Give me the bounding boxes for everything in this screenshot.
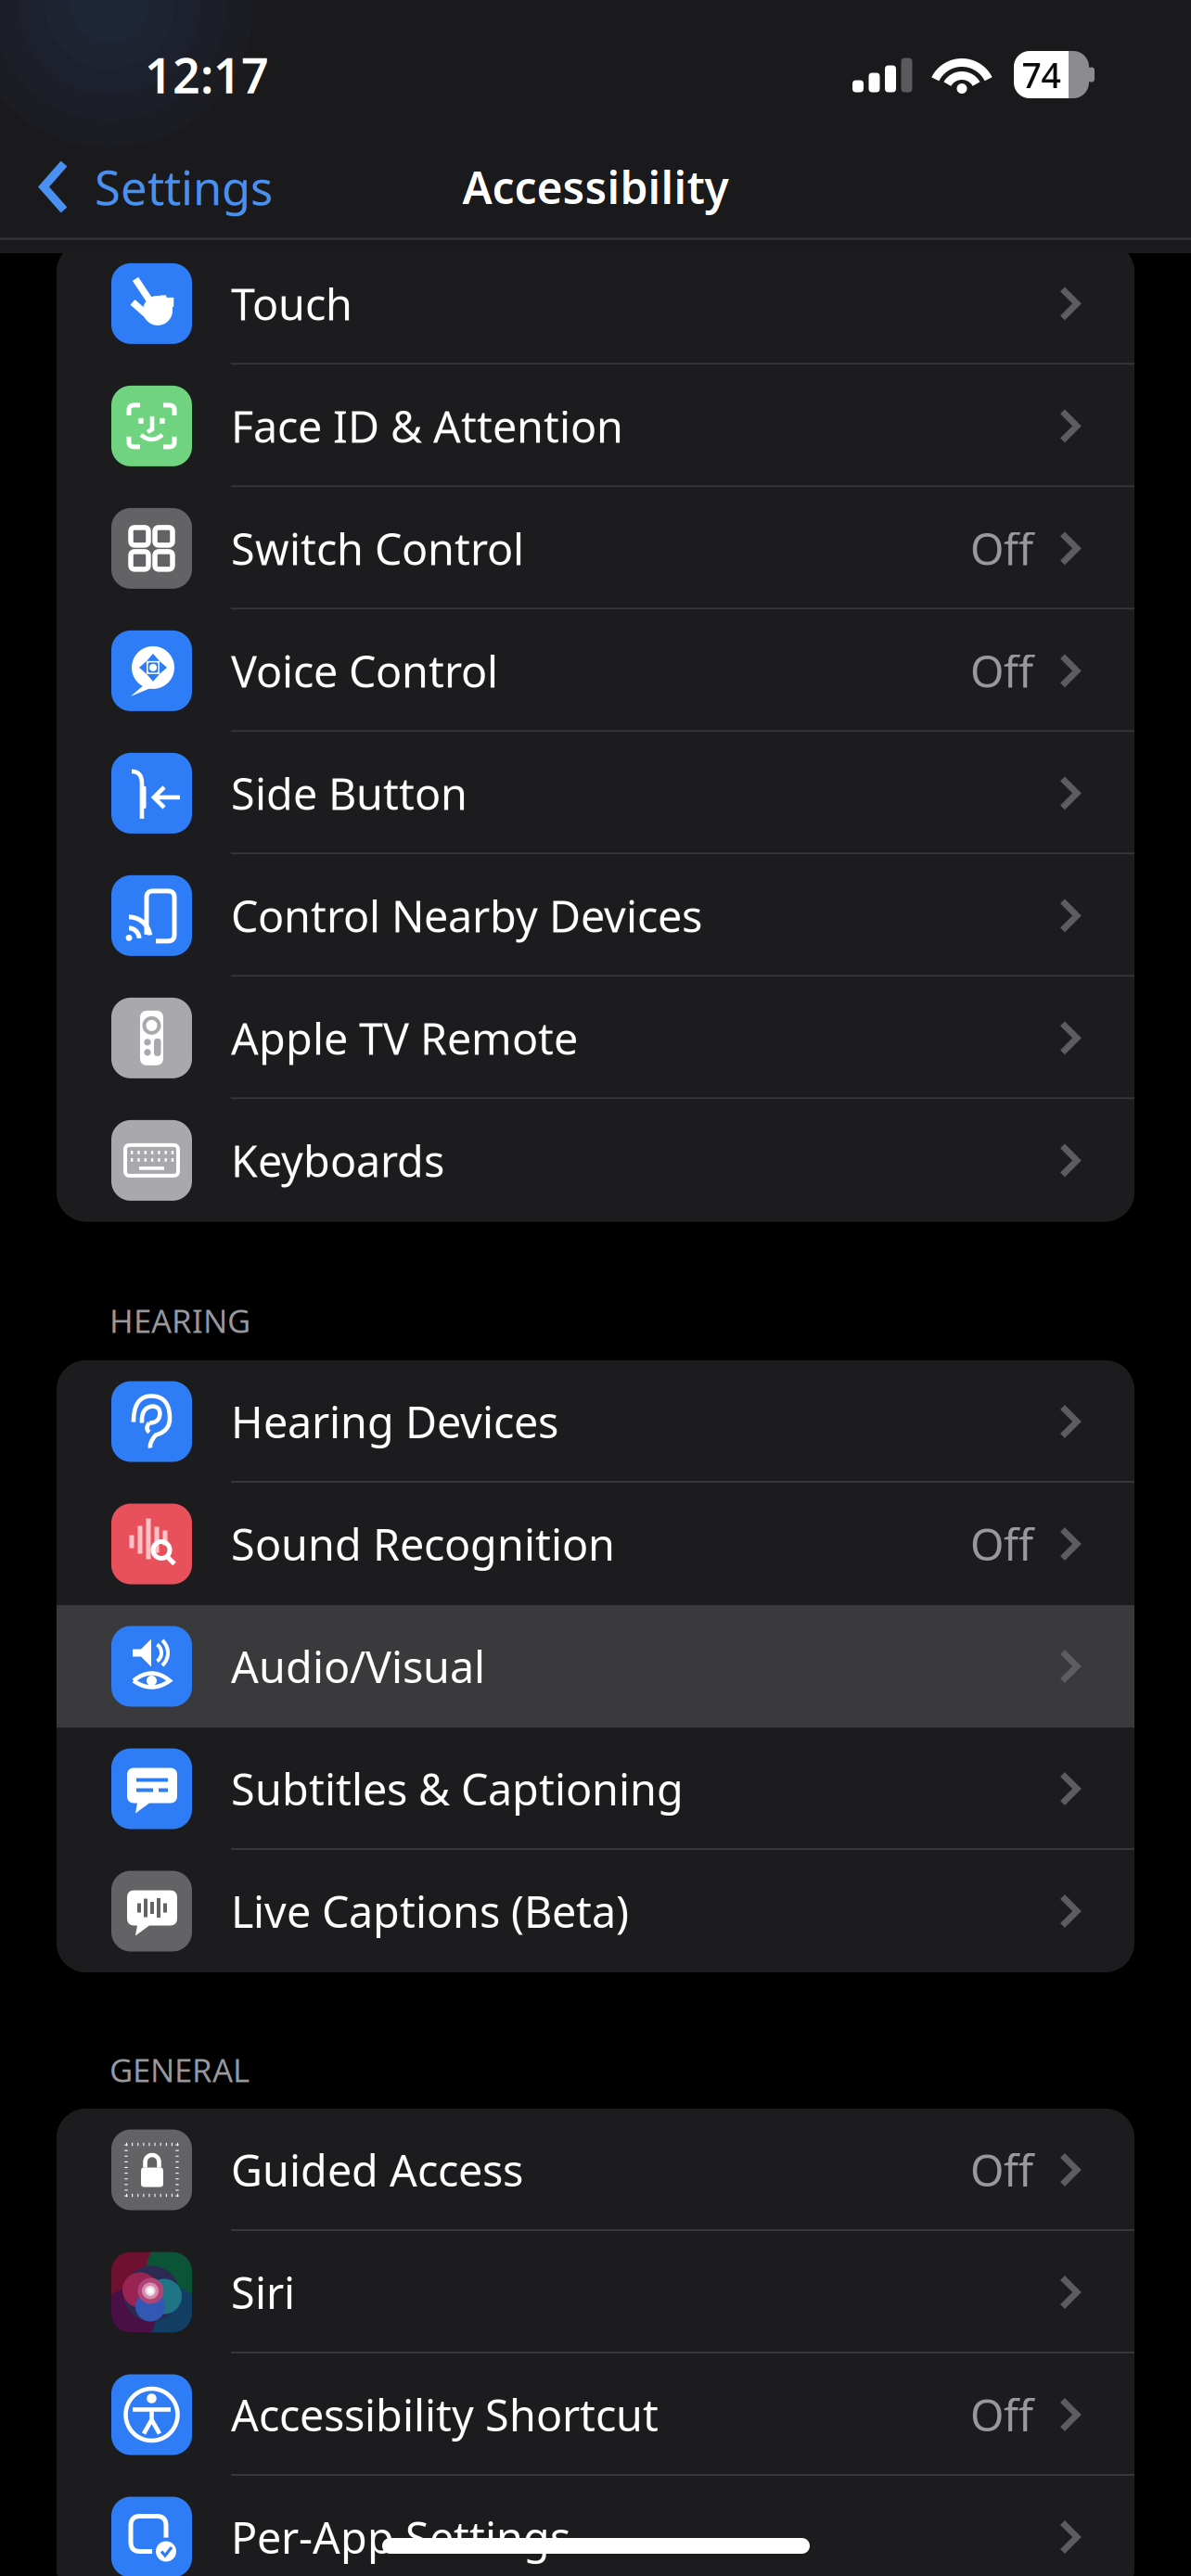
button[interactable]: Sound Recognition: [57, 1483, 1134, 1605]
button[interactable]: Face ID & Attention: [57, 365, 1134, 487]
staticText: Settings: [95, 156, 273, 218]
staticText: Touch: [231, 275, 352, 332]
staticText: Per-App Settings: [231, 2508, 570, 2566]
button[interactable]: Hearing Devices: [57, 1360, 1134, 1483]
button[interactable]: Touch: [57, 242, 1134, 365]
staticText: Accessibility Shortcut: [231, 2386, 659, 2443]
staticText: GENERAL: [109, 2048, 250, 2091]
staticText: Side Button: [231, 764, 467, 822]
button[interactable]: Control Nearby Devices: [57, 854, 1134, 977]
button[interactable]: Accessibility Shortcut: [57, 2353, 1134, 2476]
button[interactable]: Audio/Visual: [57, 1605, 1134, 1728]
staticText: Off: [970, 2141, 1033, 2199]
button[interactable]: Apple TV Remote: [57, 977, 1134, 1099]
staticText: HEARING: [109, 1299, 250, 1342]
staticText: Control Nearby Devices: [231, 887, 702, 944]
staticText: Siri: [231, 2264, 295, 2321]
button[interactable]: Live Captions (Beta): [57, 1850, 1134, 1972]
button[interactable]: Switch Control: [57, 487, 1134, 610]
staticText: Audio/Visual: [231, 1638, 485, 1695]
button[interactable]: Voice Control: [57, 610, 1134, 732]
button[interactable]: Subtitles & Captioning: [57, 1728, 1134, 1850]
staticText: 74: [1022, 52, 1061, 98]
staticText: Off: [970, 2386, 1033, 2443]
button[interactable]: Guided Access: [57, 2109, 1134, 2231]
staticText: Live Captions (Beta): [231, 1882, 629, 1940]
button[interactable]: Settings: [0, 136, 273, 238]
button[interactable]: Side Button: [57, 732, 1134, 854]
staticText: Face ID & Attention: [231, 397, 623, 455]
staticText: Off: [970, 642, 1033, 700]
staticText: Subtitles & Captioning: [231, 1760, 684, 1817]
staticText: Hearing Devices: [231, 1393, 558, 1450]
staticText: Voice Control: [231, 642, 498, 700]
staticText: Guided Access: [231, 2141, 523, 2199]
staticText: Off: [970, 520, 1033, 577]
staticText: Accessibility: [462, 157, 729, 216]
staticText: Switch Control: [231, 520, 524, 577]
button[interactable]: Per-App Settings: [57, 2476, 1134, 2576]
staticText: Off: [970, 1515, 1033, 1573]
staticText: Apple TV Remote: [231, 1009, 578, 1067]
button[interactable]: Siri: [57, 2231, 1134, 2353]
staticText: Sound Recognition: [231, 1515, 615, 1573]
button[interactable]: Keyboards: [57, 1099, 1134, 1222]
staticText: Keyboards: [231, 1132, 444, 1189]
staticText: 12:17: [145, 43, 269, 107]
